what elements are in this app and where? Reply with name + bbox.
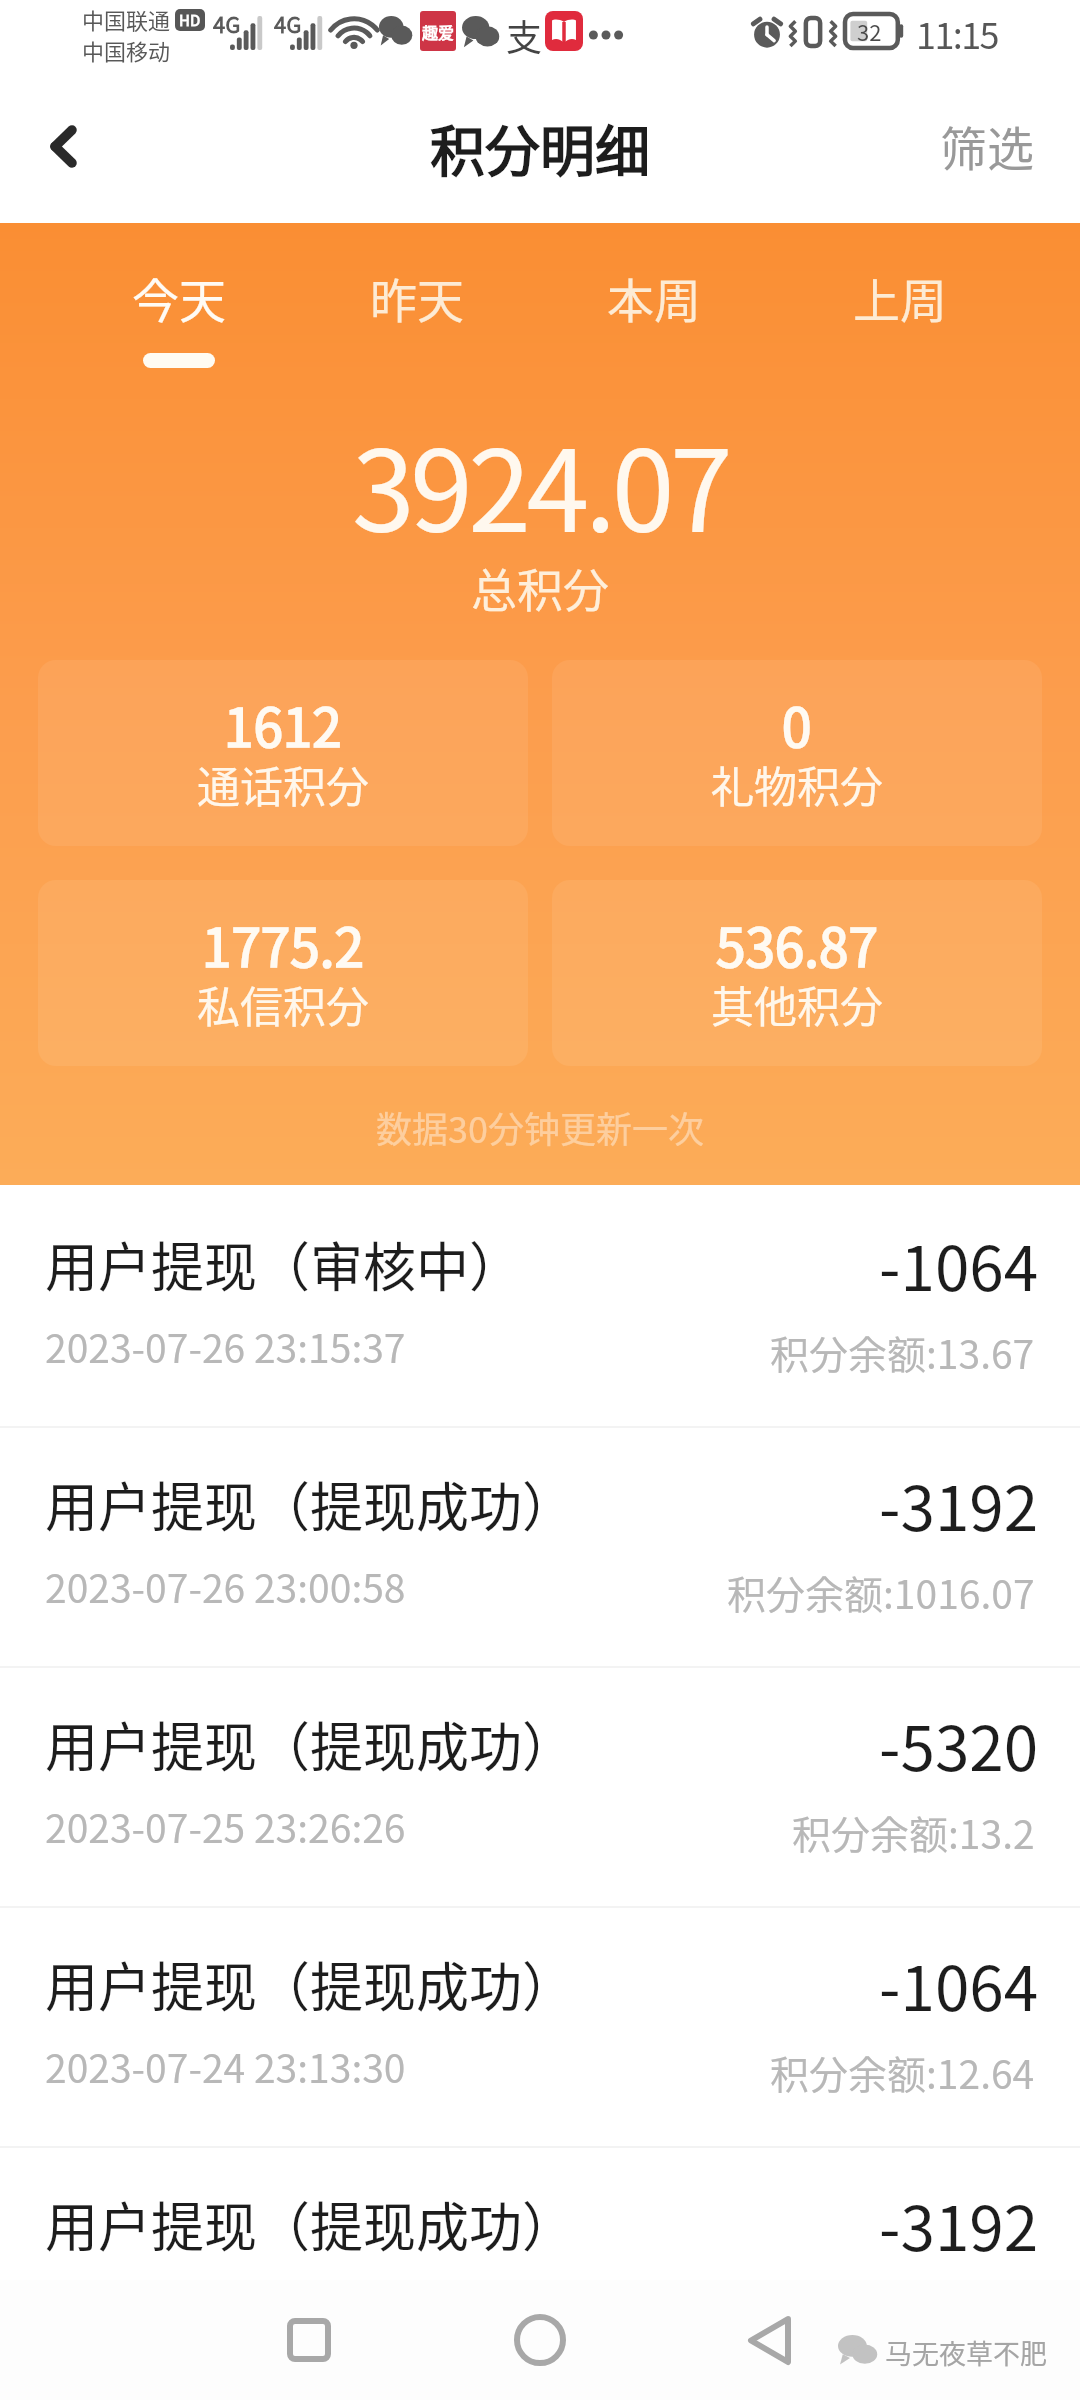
button[interactable]: 536.87: [552, 880, 1042, 1066]
staticText: 私信积分: [197, 973, 369, 1035]
button[interactable]: 筛选: [916, 89, 1058, 201]
staticText: 马无夜草不肥: [885, 2333, 1047, 2372]
staticText: -1064: [879, 1939, 1039, 2029]
staticText: 积分明细: [0, 107, 1080, 187]
staticText: 4G: [213, 7, 241, 39]
staticText: -1064: [879, 1219, 1039, 1309]
staticText: 32: [857, 15, 882, 47]
staticText: -5320: [879, 1699, 1039, 1789]
button[interactable]: 用户提现（提现成功）: [0, 1908, 1080, 2146]
staticText: 数据30分钟更新一次: [0, 1101, 1080, 1153]
button[interactable]: 昨天: [347, 263, 487, 331]
staticText: 积分余额:13.67: [770, 1324, 1035, 1380]
staticText: 支: [506, 9, 543, 61]
staticText: 积分余额:13.2: [792, 1804, 1035, 1860]
staticText: 用户提现（提现成功）: [45, 1946, 575, 2023]
button[interactable]: 0: [552, 660, 1042, 846]
button[interactable]: 上周: [830, 263, 970, 331]
button[interactable]: 1612: [38, 660, 528, 846]
staticText: 上周: [853, 263, 947, 331]
staticText: 用户提现（审核中）: [45, 1226, 522, 1303]
button[interactable]: 用户提现（提现成功）: [0, 1668, 1080, 1906]
button[interactable]: 用户提现（审核中）: [0, 1188, 1080, 1426]
staticText: 总积分: [0, 554, 1080, 621]
staticText: 通话积分: [197, 753, 369, 815]
staticText: 11:15: [916, 7, 998, 59]
staticText: 536.87: [716, 906, 878, 983]
button[interactable]: Back: [724, 2295, 814, 2385]
staticText: 2023-07-26 23:15:37: [45, 1318, 406, 1374]
button[interactable]: 1775.2: [38, 880, 528, 1066]
staticText: 2023-07-25 23:26:26: [45, 1798, 406, 1854]
button[interactable]: Back: [18, 88, 104, 174]
button[interactable]: Recents: [264, 2295, 354, 2385]
staticText: 今天: [132, 263, 226, 331]
staticText: 筛选: [940, 111, 1034, 179]
staticText: -3192: [879, 1459, 1039, 1549]
staticText: 昨天: [370, 263, 464, 331]
button[interactable]: 用户提现（提现成功）: [0, 1428, 1080, 1666]
staticText: -3192: [879, 2179, 1039, 2269]
button[interactable]: Home: [495, 2295, 585, 2385]
staticText: 4G: [274, 7, 302, 39]
staticText: 其他积分: [711, 973, 883, 1035]
staticText: 2023-07-24 23:13:30: [45, 2038, 406, 2094]
staticText: 1612: [224, 686, 342, 763]
staticText: 用户提现（提现成功）: [45, 2186, 575, 2263]
button[interactable]: 今天: [109, 263, 249, 368]
staticText: 2023-07-26 23:00:58: [45, 1558, 406, 1614]
button[interactable]: 用户提现（提现成功）: [0, 2148, 1080, 2386]
staticText: 中国联通: [82, 3, 171, 35]
staticText: 用户提现（提现成功）: [45, 1466, 575, 1543]
staticText: HD: [179, 9, 201, 31]
staticText: 趣爱: [422, 20, 455, 43]
staticText: 积分余额:1016.07: [727, 1564, 1035, 1620]
staticText: 中国移动: [82, 34, 171, 66]
staticText: 3924.07: [0, 401, 1080, 565]
staticText: 0: [782, 686, 812, 763]
button[interactable]: 本周: [584, 263, 724, 331]
staticText: 积分余额:12.64: [770, 2044, 1035, 2100]
staticText: 用户提现（提现成功）: [45, 1706, 575, 1783]
staticText: 本周: [607, 263, 701, 331]
staticText: 礼物积分: [711, 753, 883, 815]
staticText: 1775.2: [202, 906, 364, 983]
